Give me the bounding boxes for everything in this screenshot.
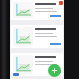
button[interactable]: View details (50, 15, 61, 17)
button[interactable]: View details (50, 43, 61, 45)
button[interactable]: View details (50, 71, 61, 73)
button[interactable]: View details (11, 53, 63, 76)
button[interactable]: Add (48, 64, 61, 77)
button[interactable]: View details (11, 25, 63, 48)
button[interactable]: View details (11, 0, 63, 20)
button[interactable]: Home (13, 73, 19, 76)
button[interactable]: Alert (59, 1, 63, 5)
